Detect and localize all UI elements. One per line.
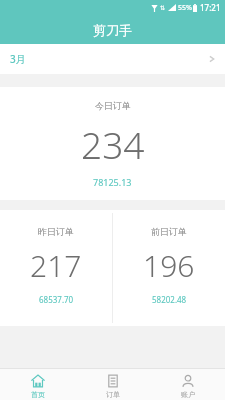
staticText: 订单 [106,390,120,399]
staticText: 3月 [10,52,26,66]
staticText: 234 [81,119,145,169]
staticText: 昨日订单 [38,226,74,237]
staticText: 账户 [181,390,195,399]
staticText: 前日订单 [151,226,187,237]
button[interactable]: 账户 [150,369,225,400]
other: Select month [209,54,215,64]
staticText: 78125.13 [93,176,132,188]
button[interactable]: 今日订单 [0,87,225,200]
button[interactable]: 3月 [0,44,225,74]
staticText: 217 [30,245,82,286]
staticText: 68537.70 [39,294,74,305]
button[interactable]: 订单 [75,369,150,400]
button[interactable]: 昨日订单 [0,210,112,326]
staticText: 196 [143,245,195,286]
staticText: 55% [178,3,192,13]
staticText: 首页 [31,390,45,399]
staticText: 剪刀手 [93,22,132,38]
staticText: ⇅ [160,4,166,11]
button[interactable]: 前日订单 [113,210,225,326]
staticText: 17:21 [200,2,221,13]
button[interactable]: 首页 [0,369,75,400]
staticText: 58202.48 [152,294,187,305]
staticText: 今日订单 [95,100,131,111]
